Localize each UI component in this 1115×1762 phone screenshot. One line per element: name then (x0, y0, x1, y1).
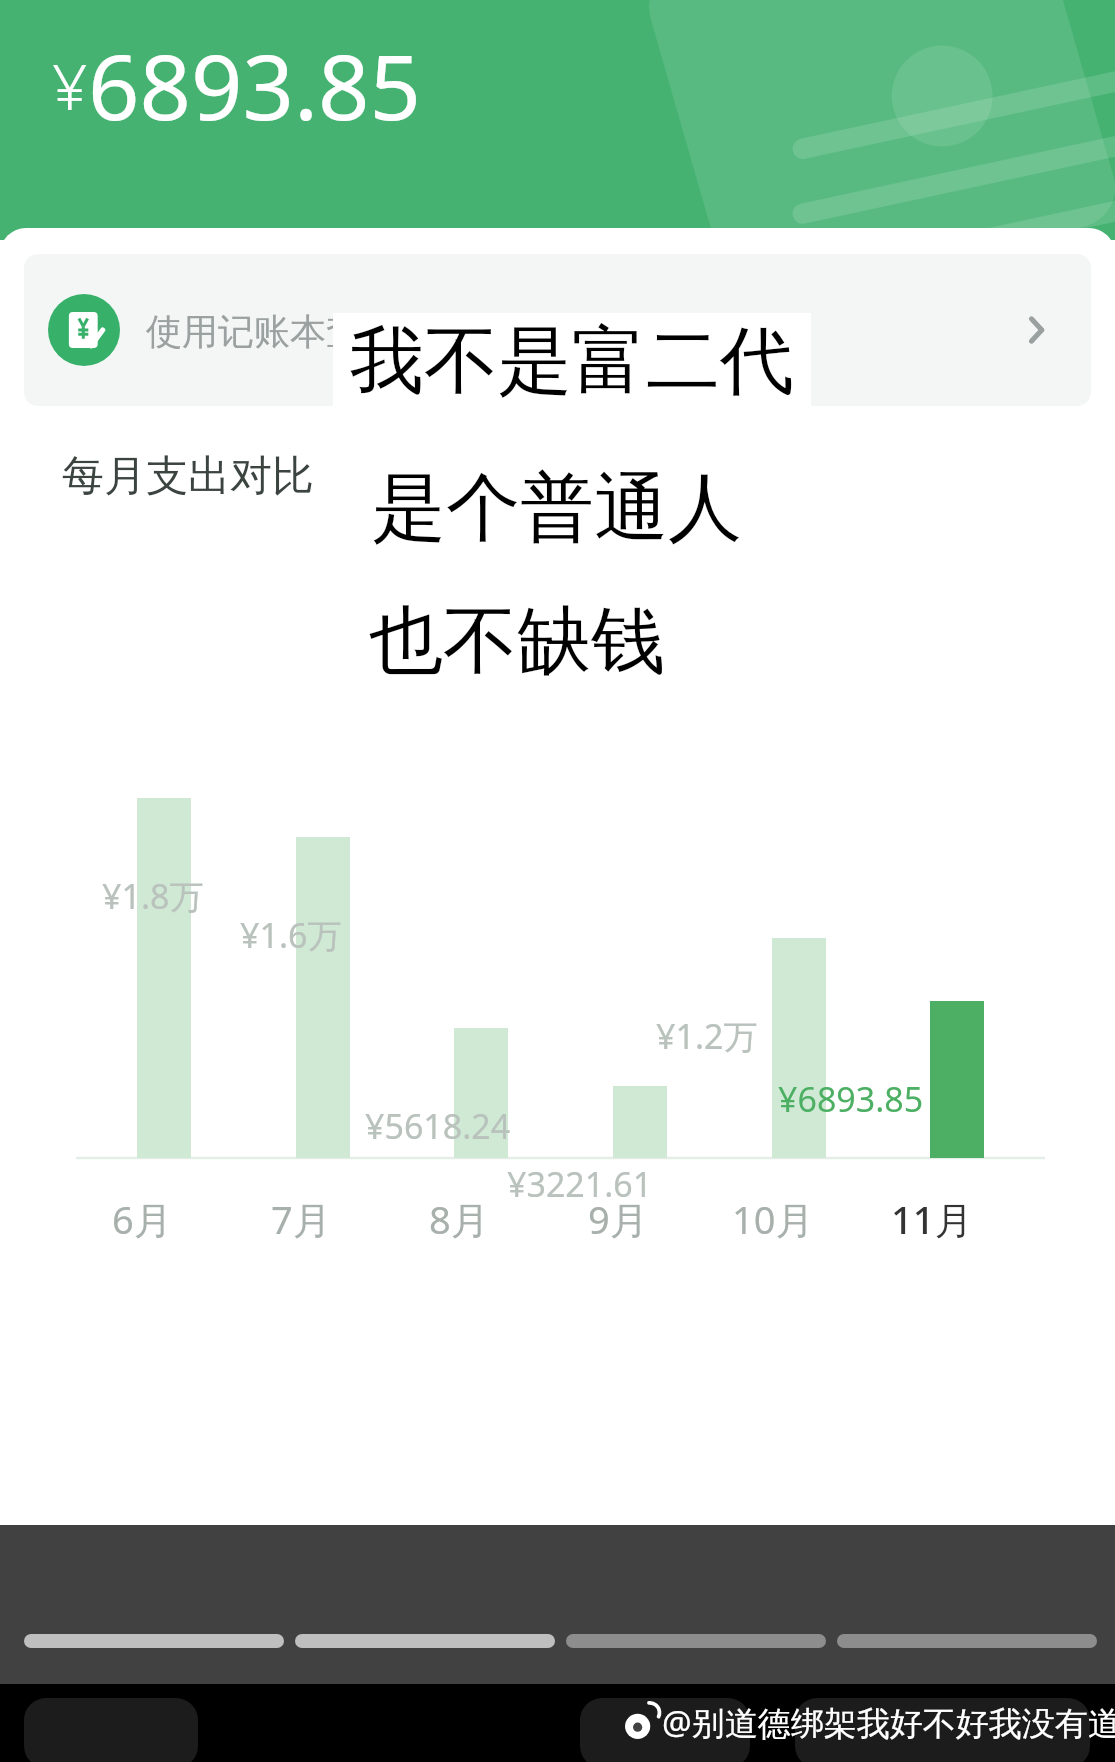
staticText: ¥3221.61 (507, 1161, 653, 1207)
staticText: ¥ (52, 44, 88, 128)
staticText: 10月 (732, 1193, 814, 1245)
button[interactable] (24, 1634, 284, 1648)
staticText: ¥5618.24 (365, 1103, 511, 1149)
staticText: 是个普通人 (372, 462, 742, 555)
staticText: 使用记账本查看分类统计(餐饮、交通等) (146, 306, 1007, 355)
staticText: 11月 (891, 1193, 973, 1245)
staticText: 8月 (429, 1193, 489, 1245)
other: More (1007, 300, 1067, 360)
button[interactable] (295, 1634, 555, 1648)
button[interactable] (566, 1634, 826, 1648)
staticText: 7月 (271, 1193, 331, 1245)
staticText: ¥1.6万 (240, 912, 342, 958)
staticText: @别道德绑架我好不好我没有道德 (662, 1700, 1115, 1745)
button[interactable]: 使用记账本查看分类统计(餐饮、交通等) (24, 254, 1091, 406)
staticText: 我不是富二代 (350, 315, 794, 408)
button[interactable] (837, 1634, 1097, 1648)
staticText: 6月 (112, 1193, 172, 1245)
staticText: ¥1.2万 (656, 1013, 758, 1059)
button[interactable] (580, 1698, 750, 1762)
staticText: ¥6893.85 (778, 1076, 924, 1122)
staticText: 也不缺钱 (369, 595, 665, 688)
staticText: 每月支出对比 (62, 450, 314, 503)
button[interactable] (795, 1698, 1090, 1762)
staticText: 9月 (588, 1193, 648, 1245)
button[interactable] (24, 1698, 198, 1762)
staticText: 6893.85 (88, 24, 421, 147)
staticText: ¥1.8万 (102, 873, 204, 919)
